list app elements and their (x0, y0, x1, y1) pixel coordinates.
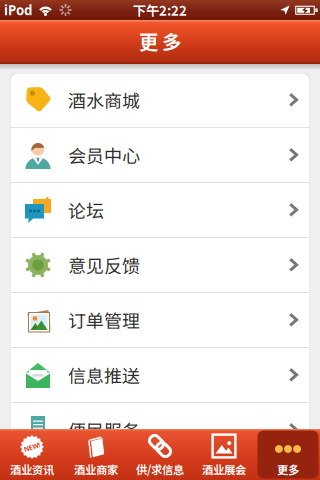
staticText: 下午2:22 (133, 0, 187, 20)
button[interactable]: 酒水商城 (10, 73, 310, 127)
staticText: 论坛 (68, 197, 104, 223)
button[interactable]: 信息推送 (10, 348, 310, 402)
staticText: 便民服务 (68, 417, 140, 443)
button[interactable]: NEW! (0, 429, 64, 480)
button[interactable]: 订单管理 (10, 293, 310, 347)
button[interactable]: 论坛 (10, 183, 310, 237)
button[interactable]: 意见反馈 (10, 238, 310, 292)
staticText: 酒业商家 (74, 461, 118, 477)
button[interactable]: 酒业商家 (64, 429, 128, 480)
staticText: 会员中心 (68, 142, 140, 168)
button[interactable]: 会员中心 (10, 128, 310, 182)
staticText: 更多 (139, 27, 181, 55)
staticText: 更多 (277, 461, 299, 477)
staticText: 订单管理 (68, 307, 140, 333)
button[interactable]: 酒业展会 (192, 429, 256, 480)
button[interactable]: 供/求信息 (128, 429, 192, 480)
staticText: NEW! (23, 443, 40, 451)
button[interactable]: 更多 (256, 429, 320, 480)
button[interactable]: 便民服务 (10, 403, 310, 457)
staticText: iPod (4, 1, 32, 19)
staticText: 酒水商城 (68, 87, 140, 113)
staticText: 酒业展会 (202, 461, 246, 477)
staticText: 信息推送 (68, 362, 140, 388)
staticText: 酒业资讯 (10, 461, 54, 477)
staticText: 供/求信息 (136, 461, 184, 477)
staticText: 意见反馈 (68, 252, 140, 278)
